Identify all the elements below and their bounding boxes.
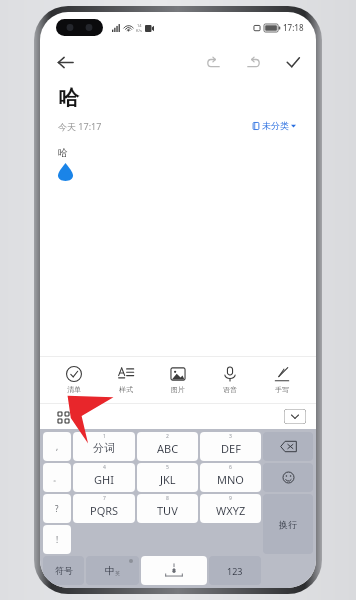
- button[interactable]: 1: [73, 432, 135, 461]
- staticText: 8: [166, 495, 169, 502]
- button[interactable]: 123: [209, 556, 261, 585]
- button[interactable]: 3: [200, 432, 261, 461]
- staticText: ,: [56, 441, 59, 452]
- staticText: TUV: [157, 503, 178, 518]
- staticText: 。: [53, 473, 61, 483]
- button[interactable]: Back: [48, 45, 82, 79]
- staticText: !: [56, 534, 59, 545]
- staticText: PQRS: [90, 503, 119, 518]
- staticText: GHI: [94, 472, 114, 487]
- staticText: MNO: [217, 472, 244, 487]
- staticText: 未分类: [262, 120, 289, 131]
- staticText: 1: [103, 433, 106, 440]
- button[interactable]: Space: [141, 556, 207, 585]
- button[interactable]: ,: [43, 432, 71, 461]
- button[interactable]: 符号: [43, 556, 84, 585]
- staticText: 换行: [279, 519, 297, 530]
- staticText: 分词: [93, 441, 115, 455]
- button[interactable]: 8: [137, 494, 198, 523]
- button[interactable]: Done: [280, 49, 306, 75]
- staticText: 7: [103, 495, 106, 502]
- staticText: JKL: [160, 472, 176, 487]
- staticText: 清单: [67, 385, 81, 394]
- staticText: 5: [166, 464, 169, 471]
- staticText: 3: [229, 433, 232, 440]
- button[interactable]: 中: [86, 556, 139, 585]
- button[interactable]: !: [43, 525, 71, 554]
- staticText: 123: [227, 565, 243, 577]
- staticText: 符号: [55, 565, 73, 576]
- staticText: WXYZ: [216, 503, 246, 518]
- button[interactable]: Undo: [200, 49, 226, 75]
- staticText: 样式: [119, 385, 133, 394]
- staticText: 9: [229, 495, 232, 502]
- staticText: 17:18: [283, 22, 304, 33]
- button[interactable]: 4: [73, 463, 135, 492]
- staticText: DEF: [221, 441, 241, 456]
- button[interactable]: ?: [43, 494, 71, 523]
- button[interactable]: 。: [43, 463, 71, 492]
- button[interactable]: 7: [73, 494, 135, 523]
- staticText: 哈: [58, 146, 68, 159]
- staticText: 中: [105, 564, 115, 577]
- staticText: 今天 17:17: [58, 120, 102, 132]
- button[interactable]: Redo: [240, 49, 266, 75]
- staticText: 英: [115, 570, 120, 576]
- staticText: ?: [55, 503, 59, 514]
- staticText: 4: [103, 464, 106, 471]
- staticText: 图片: [171, 385, 185, 394]
- button[interactable]: 样式: [100, 357, 152, 403]
- button[interactable]: 手写: [256, 357, 308, 403]
- button[interactable]: 未分类: [250, 118, 298, 133]
- staticText: 语音: [223, 385, 237, 394]
- button[interactable]: 换行: [263, 494, 313, 554]
- button[interactable]: Keyboard layouts: [52, 406, 74, 428]
- staticText: 哈: [58, 85, 79, 111]
- button[interactable]: Emoji: [263, 463, 313, 492]
- button[interactable]: 6: [200, 463, 261, 492]
- staticText: K/s: [136, 28, 142, 33]
- staticText: 手写: [275, 385, 289, 394]
- staticText: 6: [229, 464, 232, 471]
- staticText: 14: [137, 23, 142, 28]
- button[interactable]: 2: [137, 432, 198, 461]
- button[interactable]: 图片: [152, 357, 204, 403]
- button[interactable]: 9: [200, 494, 261, 523]
- button[interactable]: 清单: [48, 357, 100, 403]
- button[interactable]: 5: [137, 463, 198, 492]
- button[interactable]: Backspace: [263, 432, 313, 461]
- staticText: 2: [166, 433, 169, 440]
- button[interactable]: 语音: [204, 357, 256, 403]
- button[interactable]: Hide keyboard: [284, 409, 306, 424]
- staticText: ABC: [157, 441, 179, 456]
